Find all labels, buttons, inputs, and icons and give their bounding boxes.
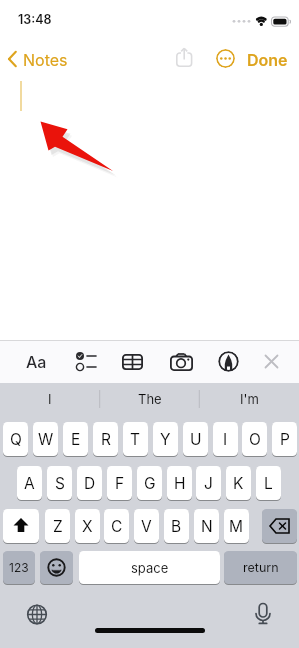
button[interactable]: The (100, 383, 199, 415)
button[interactable]: O (242, 422, 267, 456)
staticText: E (71, 430, 81, 449)
button[interactable]: G (137, 466, 162, 500)
button[interactable]: Y (153, 422, 178, 456)
staticText: G (144, 474, 156, 493)
button[interactable] (249, 600, 277, 628)
button[interactable]: C (104, 509, 129, 543)
staticText: C (111, 517, 123, 536)
button[interactable]: Notes (6, 48, 68, 70)
staticText: D (84, 474, 96, 493)
button[interactable]: L (256, 466, 281, 500)
staticText: M (229, 517, 244, 536)
button[interactable] (3, 509, 39, 543)
button[interactable]: E (63, 422, 88, 456)
button[interactable]: W (33, 422, 58, 456)
button[interactable] (263, 353, 280, 370)
button[interactable]: V (134, 509, 159, 543)
button[interactable] (216, 49, 235, 68)
button[interactable] (72, 350, 100, 372)
button[interactable]: A (17, 466, 42, 500)
staticText: X (82, 517, 93, 536)
staticText: The (138, 391, 162, 407)
button[interactable]: P (272, 422, 297, 456)
staticText: Y (160, 430, 171, 449)
button[interactable]: M (224, 509, 249, 543)
button[interactable]: R (93, 422, 118, 456)
staticText: K (233, 474, 244, 493)
staticText: P (280, 430, 290, 449)
button[interactable]: N (194, 509, 219, 543)
staticText: Z (53, 517, 63, 536)
button[interactable]: I'm (199, 383, 299, 415)
staticText: Aa (26, 352, 47, 371)
button[interactable] (40, 551, 73, 584)
button[interactable]: X (75, 509, 100, 543)
staticText: N (201, 517, 213, 536)
staticText: Q (10, 430, 22, 449)
button[interactable] (170, 352, 193, 371)
button[interactable]: B (164, 509, 189, 543)
button[interactable]: 123 (3, 551, 35, 584)
staticText: Done (247, 50, 288, 69)
button[interactable]: Z (45, 509, 70, 543)
button[interactable]: F (107, 466, 132, 500)
staticText: W (38, 430, 54, 449)
button[interactable] (218, 351, 239, 372)
staticText: J (204, 474, 213, 493)
staticText: T (130, 430, 141, 449)
staticText: U (190, 430, 202, 449)
staticText: I'm (240, 391, 259, 407)
staticText: A (24, 474, 35, 493)
staticText: space (131, 560, 169, 576)
button[interactable]: I (213, 422, 238, 456)
staticText: S (55, 474, 65, 493)
button[interactable] (23, 600, 51, 628)
staticText: L (264, 474, 273, 493)
staticText: V (141, 517, 152, 536)
button[interactable]: T (123, 422, 148, 456)
staticText: R (101, 430, 111, 449)
staticText: I (48, 391, 52, 407)
button[interactable]: space (79, 551, 220, 584)
button[interactable]: U (183, 422, 208, 456)
staticText: Notes (23, 50, 68, 69)
button[interactable]: Q (3, 422, 28, 456)
button[interactable]: Done (245, 48, 290, 71)
button[interactable] (122, 354, 143, 370)
button[interactable]: I (0, 383, 100, 415)
staticText: I (223, 430, 228, 449)
button[interactable]: S (47, 466, 72, 500)
staticText: O (249, 430, 261, 449)
button[interactable]: K (226, 466, 251, 500)
staticText: return (243, 560, 279, 575)
staticText: 13:48 (18, 12, 52, 27)
staticText: H (174, 474, 186, 493)
button[interactable]: J (196, 466, 221, 500)
button[interactable]: D (77, 466, 102, 500)
button[interactable] (262, 509, 297, 543)
staticText: 123 (9, 560, 29, 575)
button[interactable] (172, 46, 196, 72)
staticText: F (115, 474, 125, 493)
button[interactable]: return (224, 551, 297, 584)
button[interactable]: H (167, 466, 192, 500)
button[interactable]: Aa (20, 350, 52, 372)
staticText: B (171, 517, 182, 536)
